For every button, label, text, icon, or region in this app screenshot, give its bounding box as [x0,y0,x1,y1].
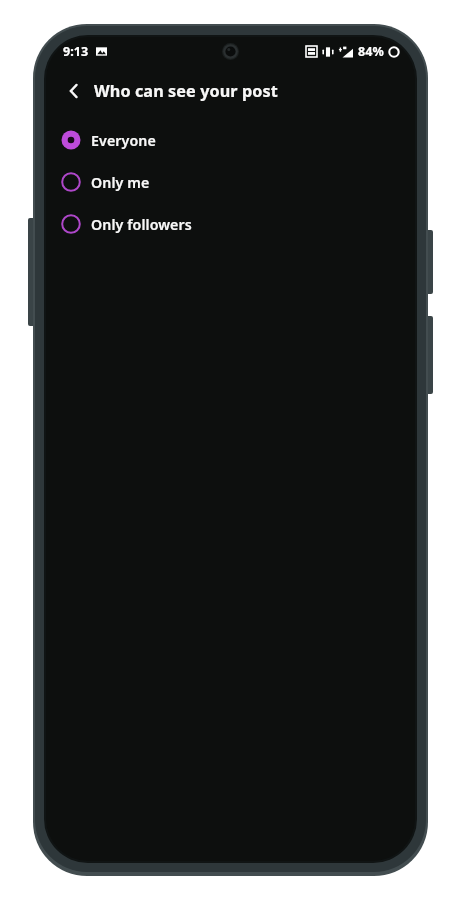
staticText: Who can see your post [94,80,278,102]
staticText: 9:13 [63,43,89,60]
button[interactable]: Only me [46,161,415,203]
button[interactable]: Everyone [46,119,415,161]
staticText: Only followers [91,215,192,234]
staticText: Everyone [91,131,156,150]
staticText: Only me [91,173,150,192]
staticText: 84% [358,43,384,60]
button[interactable]: Back [60,77,88,105]
button[interactable]: Only followers [46,203,415,245]
